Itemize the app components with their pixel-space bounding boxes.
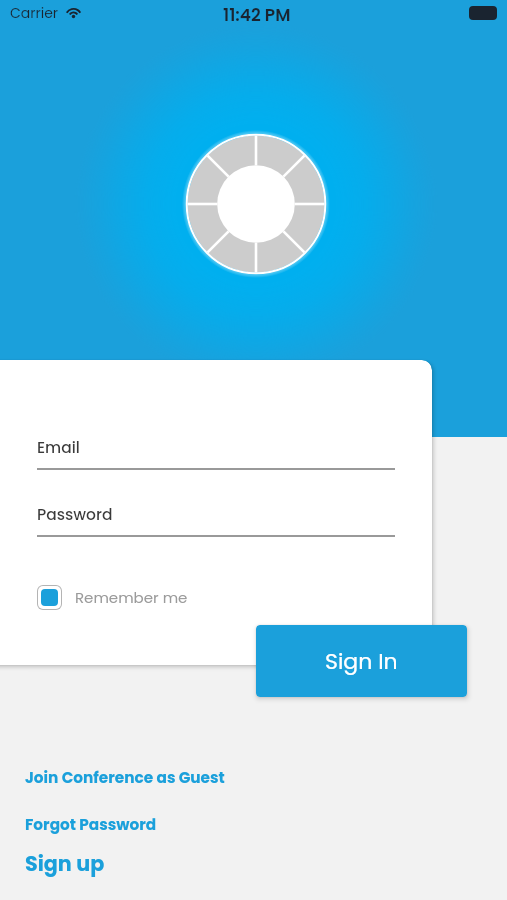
staticText: Sign up (25, 849, 105, 878)
staticText: Forgot Password (25, 814, 157, 835)
button[interactable]: Forgot Password (25, 814, 157, 835)
button[interactable]: Sign up (25, 849, 105, 878)
button[interactable]: Email (37, 437, 395, 470)
other: Battery (469, 6, 497, 20)
staticText: Sign In (325, 646, 398, 677)
staticText: 11:42 PM (223, 3, 291, 27)
other: App logo (186, 134, 326, 274)
button[interactable]: Sign In (256, 625, 467, 697)
staticText: Password (37, 504, 113, 526)
staticText: Carrier (10, 3, 59, 23)
button[interactable]: Join Conference as Guest (25, 767, 225, 788)
staticText: Join Conference as Guest (25, 767, 225, 788)
button[interactable]: Password (37, 504, 395, 537)
button[interactable]: Remember me (37, 585, 188, 610)
other: Wi-Fi (65, 5, 82, 22)
staticText: Email (37, 437, 80, 459)
staticText: Remember me (75, 587, 188, 608)
